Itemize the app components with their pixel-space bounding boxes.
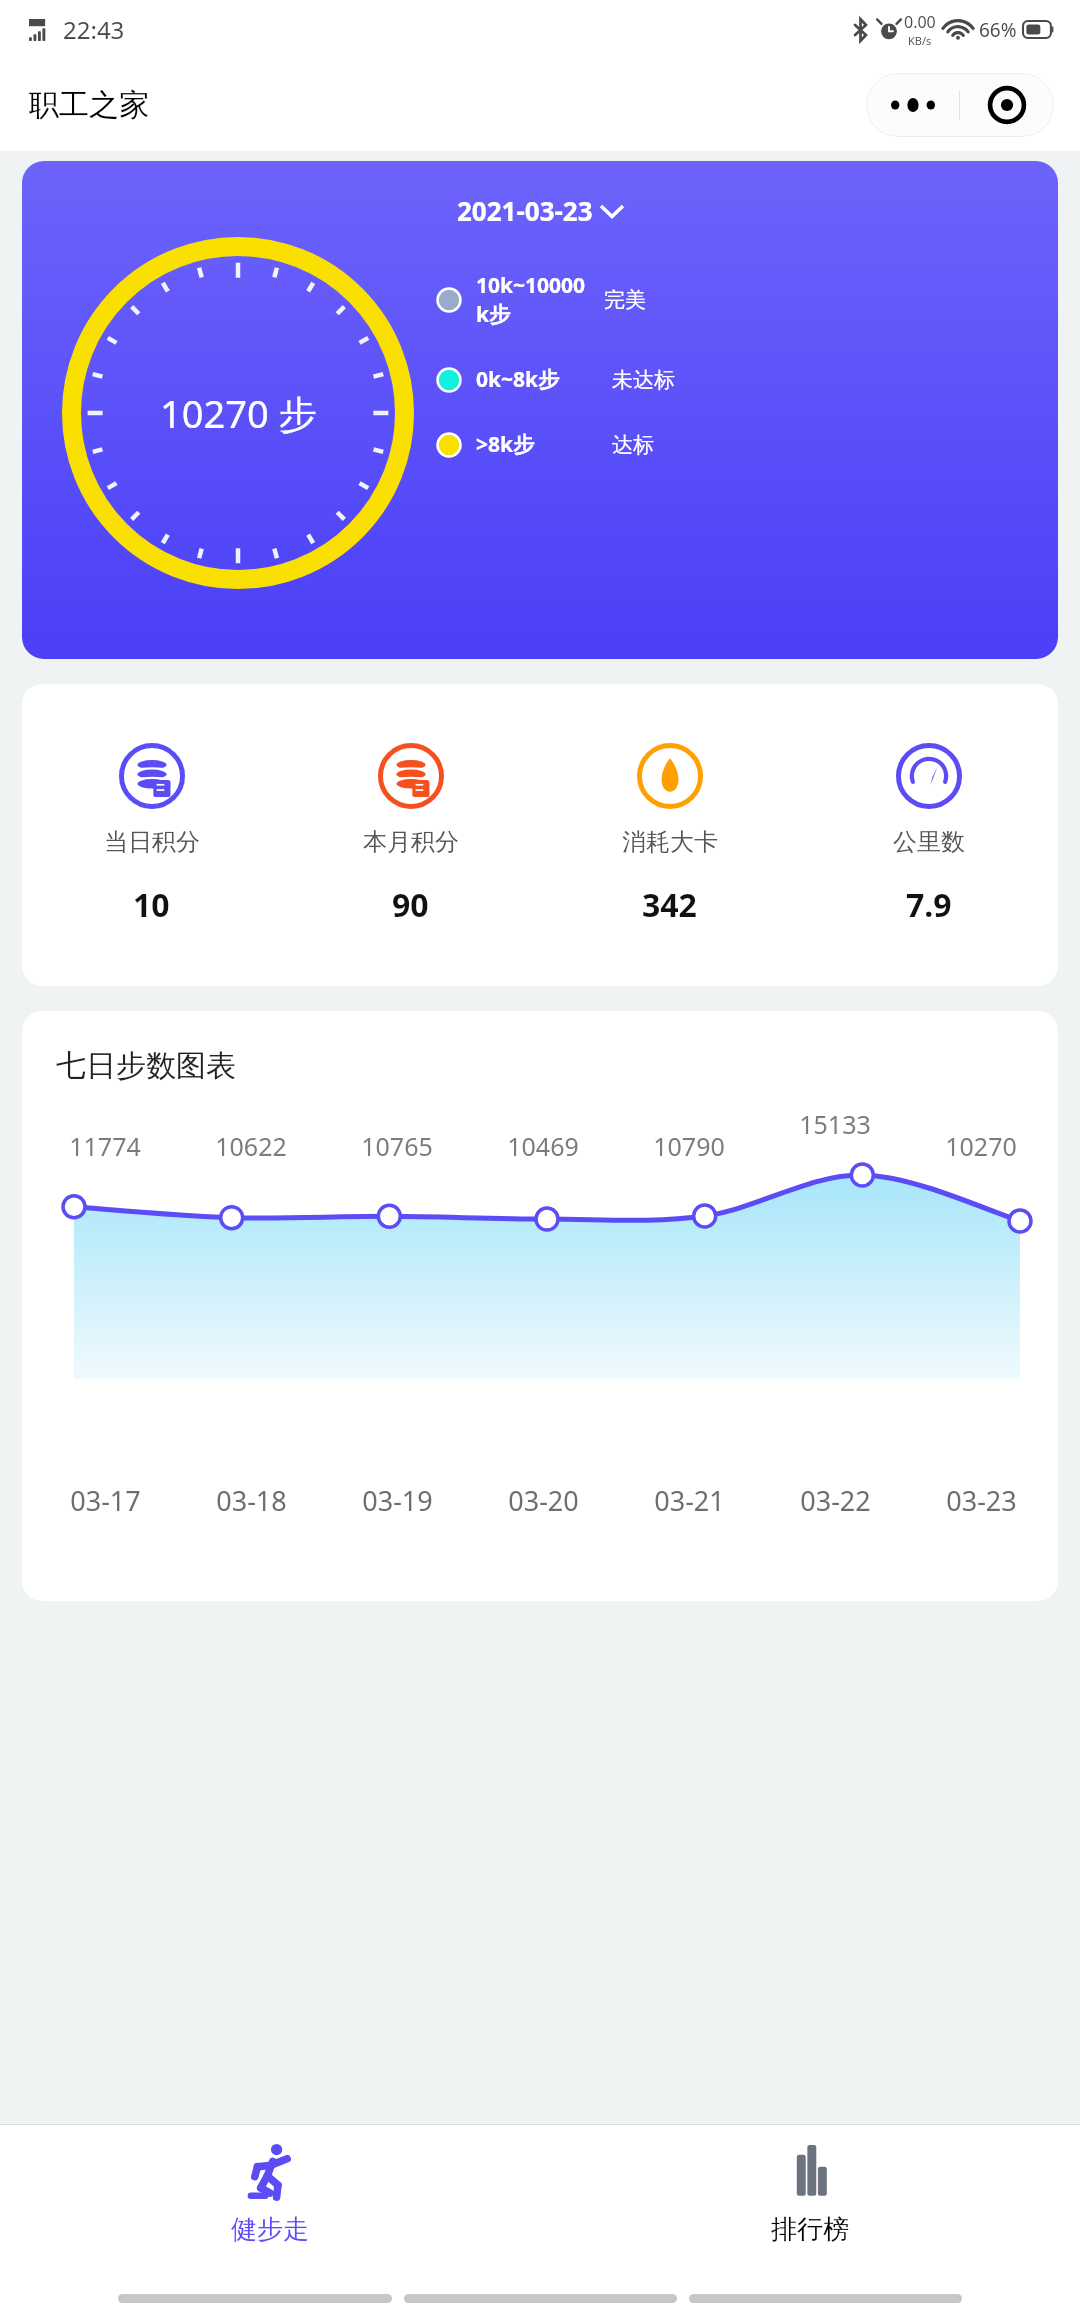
staticText: 职工之家 xyxy=(29,86,149,124)
staticText: 7.9 xyxy=(906,883,952,927)
staticText: 03-17 xyxy=(70,1482,141,1519)
staticText: 03-18 xyxy=(216,1482,287,1519)
button[interactable]: 消耗大卡 xyxy=(540,684,799,986)
staticText: KB/s xyxy=(908,33,932,48)
button[interactable]: 健步走 xyxy=(0,2125,540,2280)
staticText: 342 xyxy=(642,883,697,927)
staticText: 10622 xyxy=(215,1129,287,1163)
staticText: 10765 xyxy=(361,1129,433,1163)
staticText: 90 xyxy=(392,883,429,927)
staticText: 03-21 xyxy=(654,1482,725,1519)
staticText: 七日步数图表 xyxy=(56,1047,236,1085)
staticText: 0k~8k步 xyxy=(476,365,606,394)
staticText: 0.00 xyxy=(904,11,936,33)
staticText: 66% xyxy=(979,17,1017,43)
staticText: 10469 xyxy=(507,1129,579,1163)
staticText: 10790 xyxy=(653,1129,725,1163)
staticText: 03-19 xyxy=(362,1482,433,1519)
button[interactable]: >8k步 xyxy=(436,430,732,459)
button[interactable]: 本月积分 xyxy=(281,684,540,986)
button[interactable]: 10k~10000k步 xyxy=(436,271,732,329)
staticText: 健步走 xyxy=(231,2213,309,2246)
staticText: 11774 xyxy=(69,1129,141,1163)
button[interactable]: 0k~8k步 xyxy=(436,365,732,394)
button[interactable]: 公里数 xyxy=(799,684,1058,986)
staticText: >8k步 xyxy=(476,430,606,459)
staticText: 03-23 xyxy=(946,1482,1017,1519)
staticText: 排行榜 xyxy=(771,2213,849,2246)
staticText: 03-20 xyxy=(508,1482,579,1519)
staticText: 10k~10000k步 xyxy=(476,271,598,329)
staticText: 03-22 xyxy=(800,1482,871,1519)
button[interactable]: More xyxy=(866,73,959,137)
staticText: 达标 xyxy=(612,432,654,458)
staticText: 未达标 xyxy=(612,367,675,393)
staticText: 本月积分 xyxy=(363,827,459,857)
staticText: 10 xyxy=(133,883,170,927)
button[interactable]: 排行榜 xyxy=(540,2125,1080,2280)
staticText: 2021-03-23 xyxy=(457,193,593,228)
button[interactable]: Close xyxy=(960,73,1054,137)
staticText: 消耗大卡 xyxy=(622,827,718,857)
staticText: 完美 xyxy=(604,287,646,313)
staticText: 22:43 xyxy=(63,13,125,46)
staticText: 15133 xyxy=(799,1107,871,1141)
staticText: 10270 步 xyxy=(160,387,317,439)
button[interactable]: 当日积分 xyxy=(22,684,281,986)
staticText: 公里数 xyxy=(893,827,965,857)
button[interactable]: 2021-03-23 xyxy=(22,161,1058,659)
staticText: 当日积分 xyxy=(104,827,200,857)
staticText: 10270 xyxy=(945,1129,1017,1163)
